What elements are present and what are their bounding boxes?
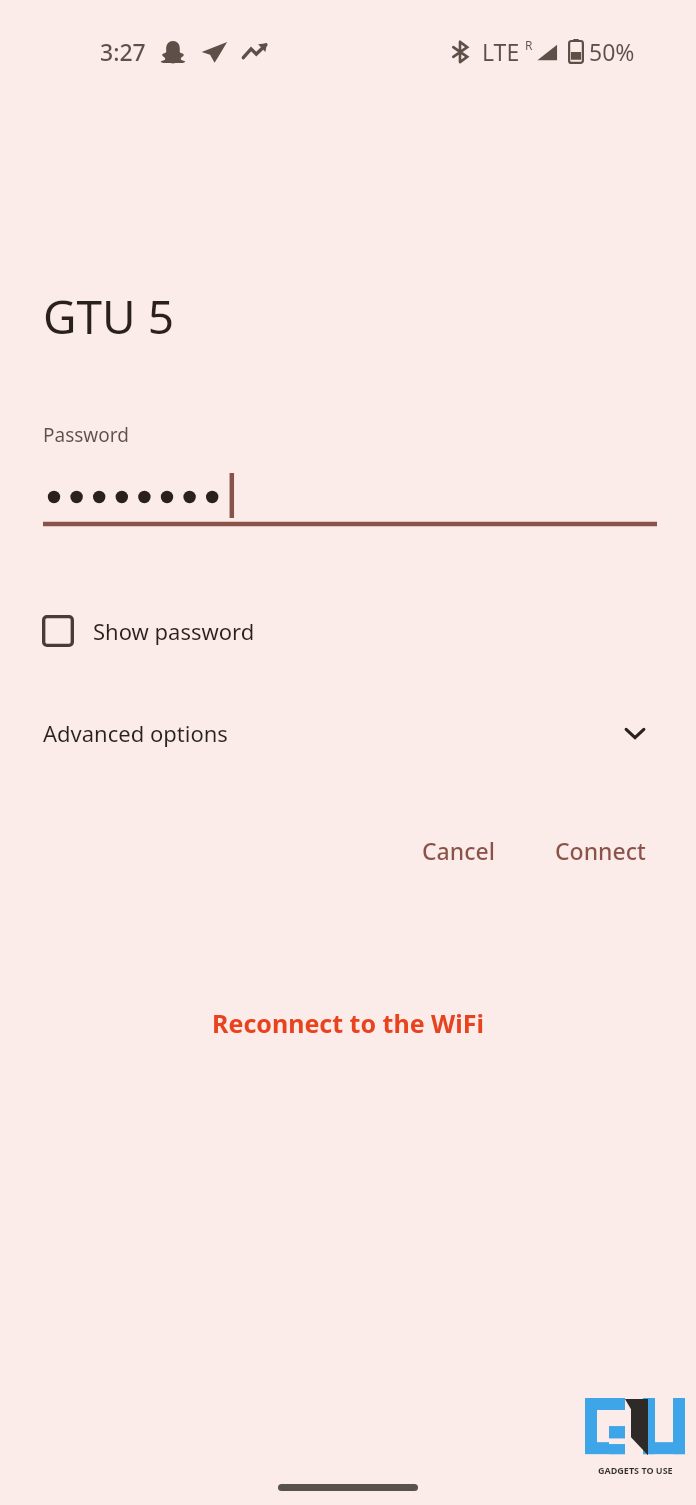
button[interactable]: Reconnect to the WiFi <box>198 1000 498 1046</box>
button[interactable]: Cancel <box>400 823 517 878</box>
button[interactable]: Show password <box>36 605 261 657</box>
staticText: Cancel <box>422 835 495 866</box>
staticText: GTU 5 <box>43 285 174 348</box>
button[interactable] <box>43 455 657 527</box>
staticText: R <box>525 37 533 53</box>
button[interactable]: Connect <box>533 823 668 878</box>
staticText: Password <box>43 422 129 448</box>
staticText: Connect <box>555 835 646 866</box>
button[interactable]: Advanced options <box>43 705 653 761</box>
other: Expand advanced options <box>617 715 653 751</box>
staticText: LTE <box>482 36 520 67</box>
staticText: 3:27 <box>100 36 146 67</box>
staticText: Reconnect to the WiFi <box>212 1006 484 1040</box>
staticText: Show password <box>93 616 255 646</box>
staticText: 50% <box>589 36 635 67</box>
staticText: Advanced options <box>43 718 617 748</box>
staticText: GADGETS TO USE <box>598 1464 673 1476</box>
